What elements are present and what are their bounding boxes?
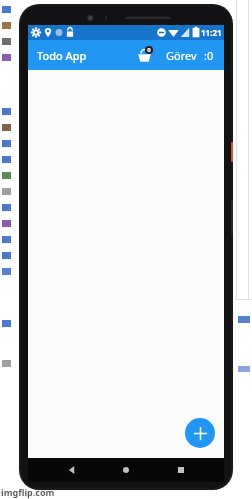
- button[interactable]: Todo App: [37, 48, 87, 63]
- staticText: :0: [204, 48, 214, 63]
- staticText: 0: [147, 46, 151, 54]
- button[interactable]: Cart: [132, 43, 156, 67]
- staticText: Todo App: [37, 48, 87, 63]
- button[interactable]: Recent apps: [170, 459, 192, 481]
- staticText: imgflip.com: [1, 486, 55, 498]
- button[interactable]: Add task: [185, 418, 215, 448]
- button[interactable]: Back: [61, 459, 83, 481]
- staticText: 11:21: [201, 27, 222, 38]
- staticText: Görev: [166, 48, 197, 63]
- button[interactable]: Görev: [166, 48, 224, 63]
- button[interactable]: Home: [115, 459, 137, 481]
